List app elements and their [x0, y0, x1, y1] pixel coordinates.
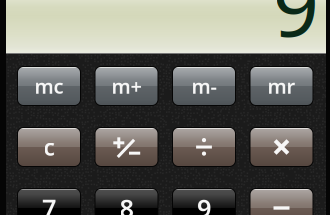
button[interactable]: 8 [94, 188, 158, 215]
button[interactable]: Memory clear [17, 66, 81, 106]
button[interactable]: Plus minus [94, 127, 158, 167]
button[interactable]: 7 [17, 188, 81, 215]
staticText: 7 [42, 191, 56, 215]
staticText: mc [34, 73, 63, 99]
button[interactable]: Multiply [249, 127, 313, 167]
button[interactable]: Memory add [94, 66, 158, 106]
staticText: c [43, 132, 54, 162]
button[interactable]: Memory subtract [172, 66, 236, 106]
button[interactable]: Minus [249, 188, 313, 215]
staticText: 8 [119, 191, 133, 215]
button[interactable]: 9 [172, 188, 236, 215]
staticText: m+ [111, 73, 141, 99]
staticText: mr [267, 73, 295, 99]
button[interactable]: Clear [17, 127, 81, 167]
staticText: 9 [197, 191, 211, 215]
staticText: 9 [272, 0, 319, 59]
staticText: m- [191, 73, 216, 99]
button[interactable]: Divide [172, 127, 236, 167]
button[interactable]: Memory recall [249, 66, 313, 106]
